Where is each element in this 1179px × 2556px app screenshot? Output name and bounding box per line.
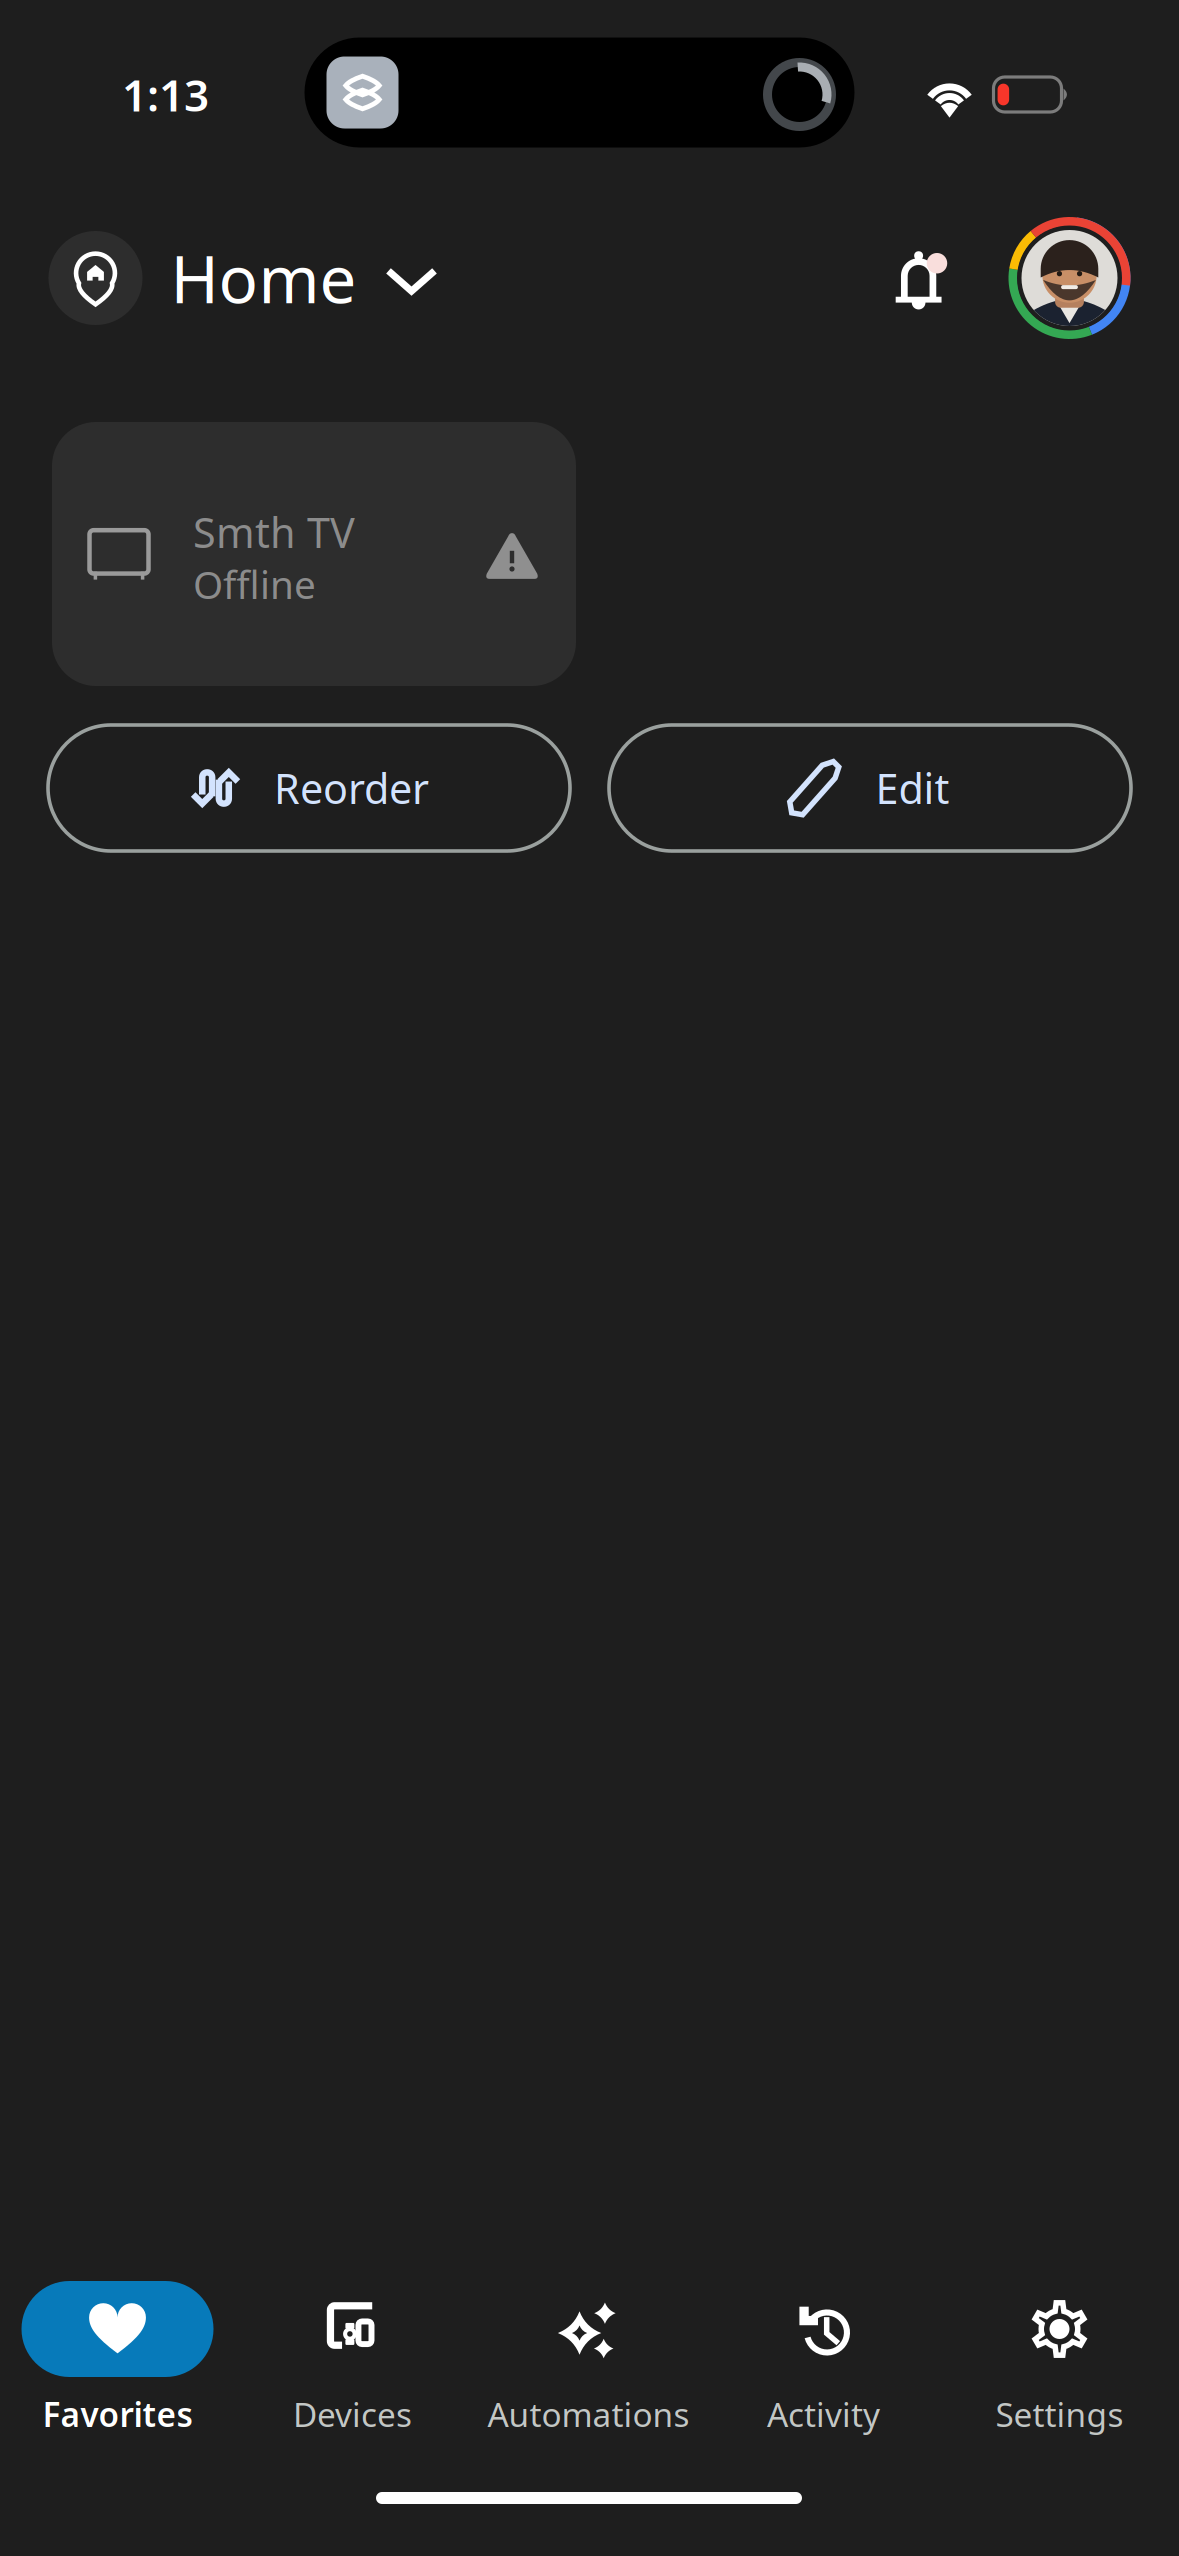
button[interactable]: Smth TV — [52, 422, 576, 686]
button[interactable]: Edit — [609, 725, 1131, 851]
button[interactable]: Reorder — [48, 725, 570, 851]
staticText: Activity — [767, 2392, 880, 2436]
staticText: Devices — [293, 2392, 412, 2436]
button[interactable]: Settings — [941, 2281, 1177, 2461]
button[interactable]: Automations — [470, 2281, 706, 2461]
staticText: Settings — [995, 2392, 1123, 2436]
staticText: Offline — [193, 558, 316, 610]
staticText: Smth TV — [193, 505, 355, 559]
button[interactable]: Favorites — [0, 2281, 235, 2461]
staticText: Home — [170, 235, 356, 321]
staticText: Reorder — [274, 761, 429, 815]
button[interactable]: Activity — [705, 2281, 941, 2461]
button[interactable]: Home — [48, 218, 448, 338]
staticText: Favorites — [42, 2392, 192, 2436]
button[interactable]: Devices — [234, 2281, 470, 2461]
button[interactable]: Account — [1008, 217, 1130, 339]
staticText: 1:13 — [122, 65, 209, 124]
button[interactable]: Notifications — [866, 223, 976, 333]
staticText: Automations — [487, 2392, 689, 2436]
staticText: Edit — [875, 761, 949, 815]
